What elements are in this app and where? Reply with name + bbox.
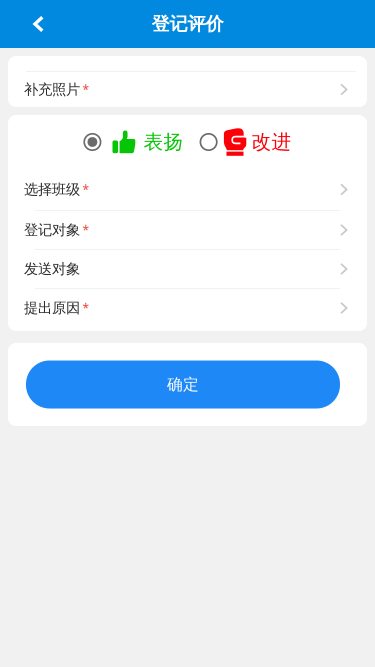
button[interactable]: 确定 — [26, 360, 340, 408]
staticText: 登记评价 — [151, 13, 223, 35]
staticText: * — [82, 222, 89, 238]
staticText: * — [82, 181, 89, 198]
staticText: 登记对象 — [24, 221, 80, 239]
button[interactable]: 登记对象 — [8, 211, 367, 249]
button[interactable]: 改进 — [200, 128, 292, 156]
staticText: 选择班级 — [24, 180, 80, 198]
button[interactable]: 发送对象 — [8, 250, 367, 288]
staticText: 改进 — [252, 130, 292, 154]
button[interactable]: 补充照片 — [8, 72, 367, 107]
button[interactable]: 表扬 — [83, 130, 184, 154]
staticText: 提出原因 — [24, 299, 80, 317]
staticText: 发送对象 — [24, 260, 80, 278]
staticText: * — [82, 81, 89, 98]
button[interactable]: 选择班级 — [8, 169, 367, 210]
staticText: 补充照片 — [24, 80, 80, 98]
staticText: 表扬 — [144, 130, 184, 154]
staticText: * — [82, 300, 89, 316]
staticText: 确定 — [167, 375, 199, 394]
button[interactable]: 提出原因 — [8, 289, 367, 327]
button[interactable]: Back — [0, 0, 45, 48]
